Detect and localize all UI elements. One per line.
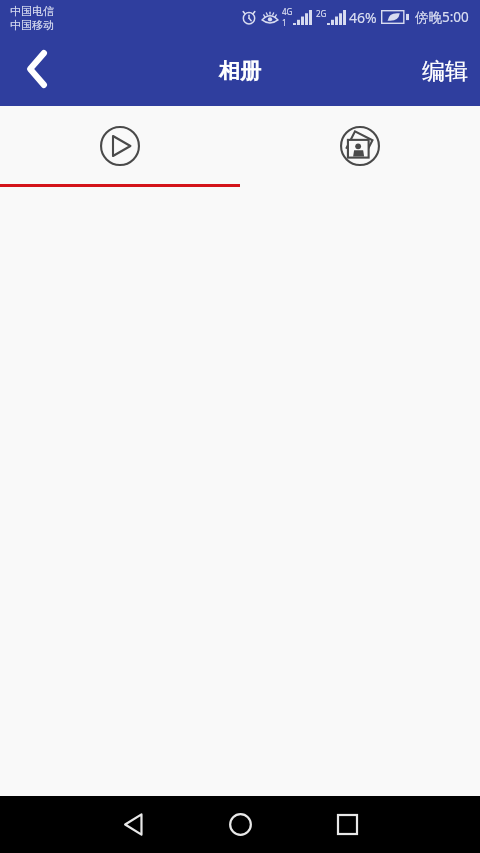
button[interactable]: Back	[80, 796, 187, 853]
staticText: 2G	[316, 8, 327, 19]
staticText: 46%	[349, 8, 377, 27]
staticText: 4G	[282, 6, 293, 17]
staticText: 中国移动	[10, 18, 54, 32]
staticText: 傍晚5:00	[415, 8, 469, 26]
button[interactable]: Videos	[0, 106, 240, 186]
staticText: 1	[282, 17, 287, 28]
button[interactable]: Back	[0, 36, 62, 106]
staticText: 相册	[219, 58, 261, 84]
button[interactable]: 编辑	[410, 47, 480, 96]
staticText: 中国电信	[10, 4, 54, 18]
staticText: 编辑	[422, 57, 468, 86]
button[interactable]: Home	[187, 796, 294, 853]
button[interactable]: Recents	[294, 796, 401, 853]
button[interactable]: Photos	[240, 106, 480, 186]
